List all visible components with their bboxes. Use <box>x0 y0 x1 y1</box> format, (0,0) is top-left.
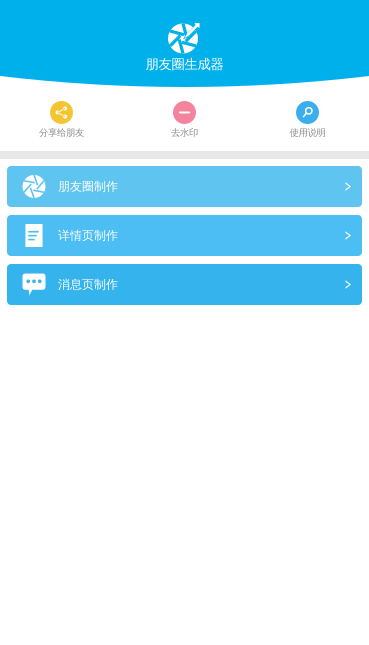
staticText: 详情页制作 <box>58 228 118 243</box>
staticText: 分享给朋友 <box>39 127 84 138</box>
staticText: 朋友圈生成器 <box>145 56 223 72</box>
button[interactable]: 详情页制作 <box>7 215 362 256</box>
staticText: 去水印 <box>171 127 198 138</box>
button[interactable]: 朋友圈制作 <box>7 166 362 207</box>
button[interactable]: 分享给朋友 <box>0 99 123 140</box>
staticText: 朋友圈制作 <box>58 179 118 194</box>
staticText: 使用说明 <box>289 127 325 138</box>
button[interactable]: 去水印 <box>123 99 246 140</box>
button[interactable]: 消息页制作 <box>7 264 362 305</box>
button[interactable]: 使用说明 <box>246 99 369 140</box>
staticText: 消息页制作 <box>58 277 118 292</box>
